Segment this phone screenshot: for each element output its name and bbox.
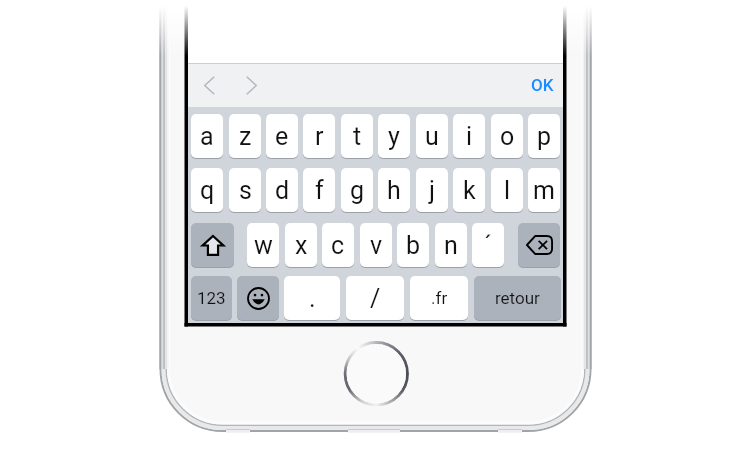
- staticText: r: [315, 122, 324, 151]
- button[interactable]: Previous field: [193, 63, 225, 107]
- button[interactable]: j: [416, 168, 448, 212]
- button[interactable]: .: [284, 276, 340, 320]
- staticText: z: [239, 122, 252, 151]
- button[interactable]: c: [322, 223, 354, 267]
- button[interactable]: Next field: [235, 63, 267, 107]
- staticText: q: [200, 176, 215, 205]
- button[interactable]: .fr: [410, 276, 468, 320]
- staticText: f: [315, 176, 324, 205]
- staticText: l: [504, 176, 511, 205]
- button[interactable]: n: [435, 223, 467, 267]
- staticText: c: [331, 231, 345, 260]
- staticText: j: [429, 176, 435, 205]
- button[interactable]: Shift: [191, 223, 234, 267]
- button[interactable]: q: [191, 168, 223, 212]
- button[interactable]: s: [229, 168, 261, 212]
- button[interactable]: m: [528, 168, 560, 212]
- staticText: y: [388, 122, 400, 151]
- button[interactable]: b: [397, 223, 429, 267]
- button[interactable]: a: [191, 114, 223, 158]
- button[interactable]: retour: [474, 276, 561, 320]
- staticText: .fr: [431, 288, 448, 308]
- button[interactable]: Emoji keyboard: [237, 276, 279, 320]
- button[interactable]: h: [378, 168, 410, 212]
- staticText: t: [353, 122, 362, 151]
- staticText: u: [425, 122, 439, 151]
- button[interactable]: /: [346, 276, 404, 320]
- button[interactable]: x: [285, 223, 317, 267]
- staticText: o: [500, 122, 515, 151]
- staticText: 123: [197, 288, 226, 308]
- button[interactable]: g: [341, 168, 373, 212]
- button[interactable]: l: [491, 168, 523, 212]
- staticText: d: [275, 176, 290, 205]
- button[interactable]: w: [247, 223, 279, 267]
- button[interactable]: 123: [191, 276, 232, 320]
- button[interactable]: ´: [472, 223, 504, 267]
- button[interactable]: Backspace: [518, 223, 560, 267]
- button[interactable]: f: [303, 168, 335, 212]
- button[interactable]: OK: [523, 63, 561, 107]
- staticText: n: [444, 231, 458, 260]
- staticText: k: [463, 176, 476, 205]
- staticText: b: [406, 231, 421, 260]
- button[interactable]: t: [341, 114, 373, 158]
- staticText: .: [309, 284, 316, 313]
- button[interactable]: d: [266, 168, 298, 212]
- staticText: i: [466, 122, 473, 151]
- button[interactable]: e: [266, 114, 298, 158]
- staticText: g: [350, 176, 365, 205]
- staticText: h: [387, 176, 401, 205]
- button[interactable]: k: [453, 168, 485, 212]
- button[interactable]: v: [360, 223, 392, 267]
- staticText: ´: [484, 231, 492, 260]
- staticText: x: [295, 231, 308, 260]
- button[interactable]: r: [303, 114, 335, 158]
- staticText: p: [537, 122, 552, 151]
- staticText: m: [533, 176, 555, 205]
- staticText: a: [200, 122, 214, 151]
- button[interactable]: o: [491, 114, 523, 158]
- staticText: s: [239, 176, 252, 205]
- button[interactable]: p: [528, 114, 560, 158]
- button[interactable]: u: [416, 114, 448, 158]
- button[interactable]: i: [453, 114, 485, 158]
- staticText: /: [370, 284, 381, 313]
- staticText: retour: [495, 288, 540, 308]
- button[interactable]: y: [378, 114, 410, 158]
- staticText: OK: [531, 75, 554, 95]
- staticText: e: [275, 122, 289, 151]
- staticText: v: [370, 231, 383, 260]
- staticText: w: [254, 231, 273, 260]
- button[interactable]: z: [229, 114, 261, 158]
